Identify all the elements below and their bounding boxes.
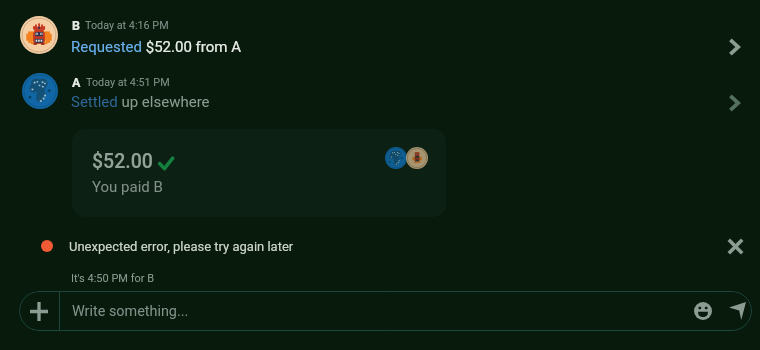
- button[interactable]: Emoji: [686, 291, 720, 331]
- staticText: Write something...: [72, 303, 189, 320]
- staticText: Today at 4:16 PM: [85, 19, 169, 32]
- button[interactable]: Write something...: [60, 291, 686, 331]
- staticText: It's 4:50 PM for B: [71, 272, 155, 285]
- button[interactable]: Add attachment: [19, 291, 59, 331]
- button[interactable]: B: [0, 8, 760, 58]
- button[interactable]: $52.00: [72, 129, 446, 217]
- button[interactable]: Dismiss error: [721, 232, 749, 260]
- button[interactable]: Open request details: [721, 34, 747, 60]
- button[interactable]: Open settle details: [721, 90, 747, 116]
- staticText: $52.00: [92, 150, 153, 173]
- staticText: B: [72, 18, 80, 33]
- button[interactable]: Send: [719, 291, 752, 331]
- staticText: Today at 4:51 PM: [86, 76, 170, 89]
- staticText: You paid B: [92, 178, 163, 196]
- button[interactable]: A: [0, 65, 760, 115]
- staticText: Settled up elsewhere: [71, 93, 210, 111]
- staticText: Requested $52.00 from A: [71, 38, 241, 56]
- staticText: Unexpected error, please try again later: [69, 239, 294, 254]
- staticText: A: [72, 75, 81, 90]
